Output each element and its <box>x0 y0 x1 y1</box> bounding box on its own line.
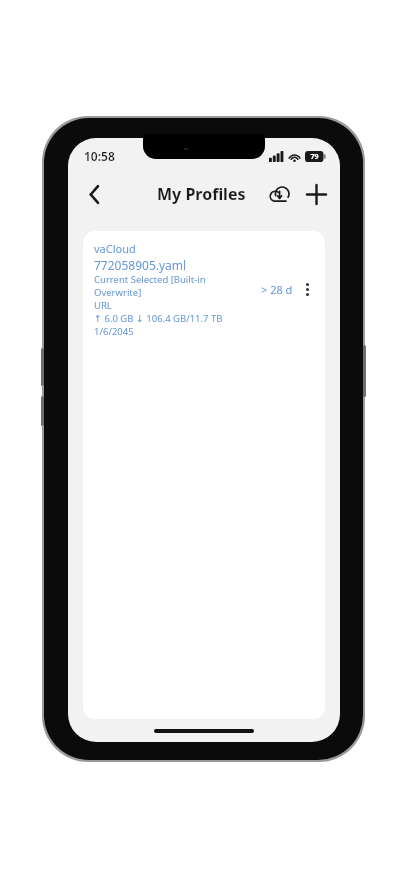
staticText: ↑ 6.0 GB ↓ 106.4 GB/11.7 TB <box>94 312 223 325</box>
staticText: 772058905.yaml <box>94 257 187 273</box>
staticText: vaCloud <box>94 241 136 256</box>
button[interactable]: More options <box>297 277 317 301</box>
staticText: Current Selected [Built-in <box>94 273 206 286</box>
button[interactable]: Download from cloud <box>262 176 298 212</box>
staticText: 1/6/2045 <box>94 325 134 338</box>
staticText: Overwrite] <box>94 286 142 299</box>
staticText: My Profiles <box>157 183 246 205</box>
staticText: 10:58 <box>84 148 115 164</box>
staticText: 79 <box>310 152 319 162</box>
button[interactable]: vaCloud <box>83 231 325 719</box>
staticText: URL <box>94 299 112 312</box>
staticText: > 28 d <box>261 282 293 297</box>
button[interactable]: Back <box>74 174 114 214</box>
button[interactable]: Add profile <box>298 176 334 212</box>
